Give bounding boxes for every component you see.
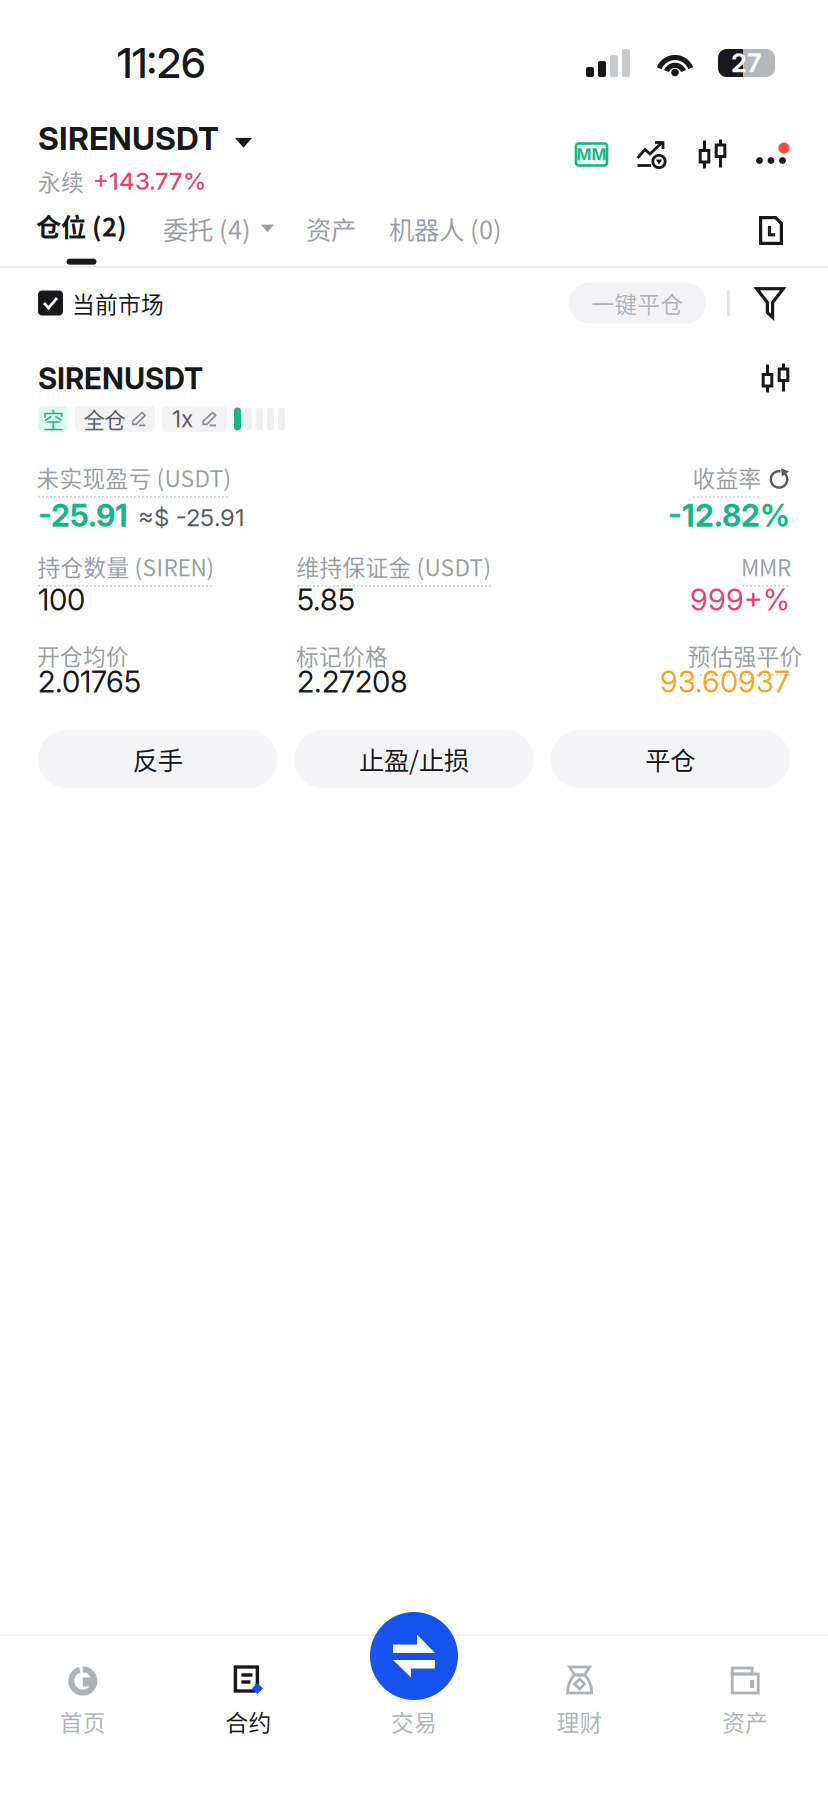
staticText: -12.82% xyxy=(668,497,790,534)
staticText: 11:26 xyxy=(117,38,206,88)
staticText: 合约 xyxy=(225,1705,271,1738)
button[interactable]: 当前市场 xyxy=(38,287,164,319)
staticText: 未实现盈亏 (USDT) xyxy=(36,461,231,494)
staticText: +143.77% xyxy=(93,167,206,196)
staticText: 持仓数量 (SIREN) xyxy=(37,550,214,583)
staticText: 93.60937 xyxy=(660,664,790,699)
staticText: 5.85 xyxy=(297,582,355,617)
staticText: 999+% xyxy=(690,582,790,617)
button[interactable]: History xyxy=(759,216,783,245)
button[interactable]: Market maker xyxy=(576,143,607,165)
staticText: 2.01765 xyxy=(38,664,141,699)
staticText: MM xyxy=(576,145,606,164)
staticText: 反手 xyxy=(133,741,183,777)
staticText: 全仓 xyxy=(83,404,125,434)
staticText: 委托 (4) xyxy=(163,210,251,247)
staticText: MMR xyxy=(741,550,791,583)
button[interactable]: 仓位 (2) xyxy=(36,207,127,265)
staticText: 平仓 xyxy=(645,741,695,777)
staticText: SIRENUSDT xyxy=(38,361,203,396)
staticText: 一键平仓 xyxy=(591,287,683,319)
button[interactable]: Filter xyxy=(755,287,785,319)
staticText: 收益率 xyxy=(692,461,761,494)
button[interactable]: 一键平仓 xyxy=(569,282,706,323)
staticText: 空 xyxy=(42,404,63,434)
staticText: 开仓均价 xyxy=(37,639,129,672)
button[interactable]: 合约 xyxy=(166,1636,331,1754)
button[interactable]: 首页 xyxy=(0,1636,166,1754)
staticText: 27 xyxy=(731,48,762,78)
staticText: 2.27208 xyxy=(297,664,408,699)
staticText: 首页 xyxy=(60,1705,106,1738)
staticText: 理财 xyxy=(557,1705,603,1738)
staticText: 机器人 (0) xyxy=(389,210,502,247)
button[interactable]: Chart xyxy=(762,363,790,394)
button[interactable]: 反手 xyxy=(38,730,277,788)
button[interactable]: 委托 (4) xyxy=(127,207,274,247)
staticText: 永续 xyxy=(38,165,84,197)
staticText: 标记价格 xyxy=(296,639,388,672)
button[interactable]: 资产 xyxy=(662,1636,828,1754)
staticText: 当前市场 xyxy=(72,287,164,319)
staticText: 资产 xyxy=(306,210,356,247)
staticText: 维持保证金 (USDT) xyxy=(296,550,491,583)
staticText: 1x xyxy=(172,405,193,433)
button[interactable]: 理财 xyxy=(497,1636,662,1754)
staticText: SIRENUSDT xyxy=(38,119,219,158)
button[interactable]: 机器人 (0) xyxy=(356,207,502,247)
button[interactable]: More xyxy=(756,142,789,166)
button[interactable]: Trade xyxy=(370,1612,458,1700)
button[interactable]: 交易 xyxy=(331,1636,497,1754)
button[interactable]: Trend xyxy=(636,141,667,168)
staticText: 资产 xyxy=(722,1705,768,1738)
button[interactable]: Chart xyxy=(699,139,727,170)
staticText: -25.91 xyxy=(38,497,128,534)
button[interactable]: SIRENUSDT xyxy=(38,119,252,197)
staticText: 止盈/止损 xyxy=(359,741,469,777)
staticText: 100 xyxy=(38,582,85,617)
button[interactable]: 资产 xyxy=(274,207,356,247)
button[interactable]: 止盈/止损 xyxy=(294,730,534,788)
staticText: 仓位 (2) xyxy=(36,207,127,244)
staticText: 预估强平价 xyxy=(687,639,802,672)
staticText: ≈$ -25.91 xyxy=(138,503,245,532)
button[interactable]: 平仓 xyxy=(551,730,790,788)
staticText: 交易 xyxy=(391,1705,437,1738)
